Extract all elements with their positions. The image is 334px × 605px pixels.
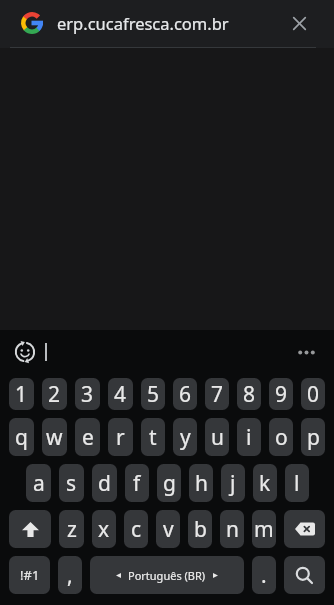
staticText: t: [149, 423, 157, 452]
staticText: c: [131, 515, 142, 544]
staticText: 1: [15, 380, 28, 409]
staticText: o: [275, 423, 288, 452]
button[interactable]: 4: [108, 378, 133, 410]
button[interactable]: [284, 510, 325, 548]
button[interactable]: b: [188, 510, 212, 548]
staticText: ,: [67, 561, 73, 590]
staticText: x: [98, 515, 110, 544]
button[interactable]: !#1: [9, 556, 50, 594]
staticText: 7: [211, 380, 224, 409]
button[interactable]: [293, 17, 306, 30]
staticText: s: [66, 469, 77, 498]
button[interactable]: .: [252, 556, 276, 594]
staticText: u: [211, 423, 224, 452]
button[interactable]: z: [59, 510, 84, 548]
staticText: y: [180, 423, 191, 452]
button[interactable]: [284, 556, 325, 594]
staticText: v: [163, 515, 174, 544]
button[interactable]: ,: [58, 556, 82, 594]
button[interactable]: [13, 340, 37, 364]
staticText: r: [116, 423, 125, 452]
button[interactable]: g: [157, 464, 181, 502]
button[interactable]: l: [285, 464, 309, 502]
button[interactable]: 7: [205, 378, 229, 410]
staticText: k: [259, 469, 271, 498]
button[interactable]: p: [301, 418, 325, 456]
button[interactable]: o: [269, 418, 293, 456]
button[interactable]: Português (BR): [90, 556, 244, 594]
staticText: .: [261, 561, 267, 590]
staticText: n: [226, 515, 239, 544]
staticText: a: [33, 469, 45, 498]
staticText: d: [98, 469, 111, 498]
staticText: j: [230, 469, 236, 498]
button[interactable]: r: [108, 418, 133, 456]
button[interactable]: [298, 350, 315, 355]
button[interactable]: u: [205, 418, 229, 456]
button[interactable]: v: [156, 510, 180, 548]
staticText: z: [67, 515, 77, 544]
button[interactable]: n: [220, 510, 244, 548]
button[interactable]: k: [253, 464, 277, 502]
staticText: g: [163, 469, 176, 498]
button[interactable]: 1: [9, 378, 34, 410]
button[interactable]: [9, 510, 51, 548]
button[interactable]: i: [237, 418, 261, 456]
staticText: 2: [48, 380, 61, 409]
button[interactable]: 0: [301, 378, 325, 410]
staticText: l: [294, 469, 300, 498]
staticText: 9: [275, 380, 288, 409]
staticText: 0: [307, 380, 320, 409]
button[interactable]: 8: [237, 378, 261, 410]
staticText: 6: [179, 380, 192, 409]
button[interactable]: e: [75, 418, 100, 456]
button[interactable]: q: [9, 418, 34, 456]
staticText: erp.cucafresca.com.br: [57, 12, 229, 34]
staticText: i: [246, 423, 252, 452]
staticText: w: [46, 423, 63, 452]
button[interactable]: s: [59, 464, 84, 502]
button[interactable]: 5: [141, 378, 165, 410]
staticText: e: [82, 423, 94, 452]
button[interactable]: erp.cucafresca.com.br: [0, 0, 334, 46]
staticText: 4: [114, 380, 127, 409]
button[interactable]: x: [92, 510, 116, 548]
staticText: q: [15, 423, 28, 452]
button[interactable]: 3: [75, 378, 100, 410]
button[interactable]: j: [221, 464, 245, 502]
button[interactable]: f: [125, 464, 149, 502]
button[interactable]: t: [141, 418, 165, 456]
staticText: 3: [81, 380, 94, 409]
button[interactable]: w: [42, 418, 67, 456]
staticText: h: [195, 469, 208, 498]
staticText: 8: [243, 380, 256, 409]
staticText: Português (BR): [128, 568, 206, 583]
button[interactable]: h: [189, 464, 213, 502]
staticText: m: [254, 515, 274, 544]
button[interactable]: c: [124, 510, 148, 548]
staticText: !#1: [20, 566, 40, 584]
button[interactable]: 6: [173, 378, 197, 410]
button[interactable]: y: [173, 418, 197, 456]
button[interactable]: a: [26, 464, 51, 502]
button[interactable]: d: [92, 464, 117, 502]
button[interactable]: m: [252, 510, 276, 548]
button[interactable]: 2: [42, 378, 67, 410]
staticText: p: [307, 423, 320, 452]
staticText: b: [194, 515, 207, 544]
staticText: 5: [147, 380, 160, 409]
staticText: f: [133, 469, 141, 498]
button[interactable]: 9: [269, 378, 293, 410]
